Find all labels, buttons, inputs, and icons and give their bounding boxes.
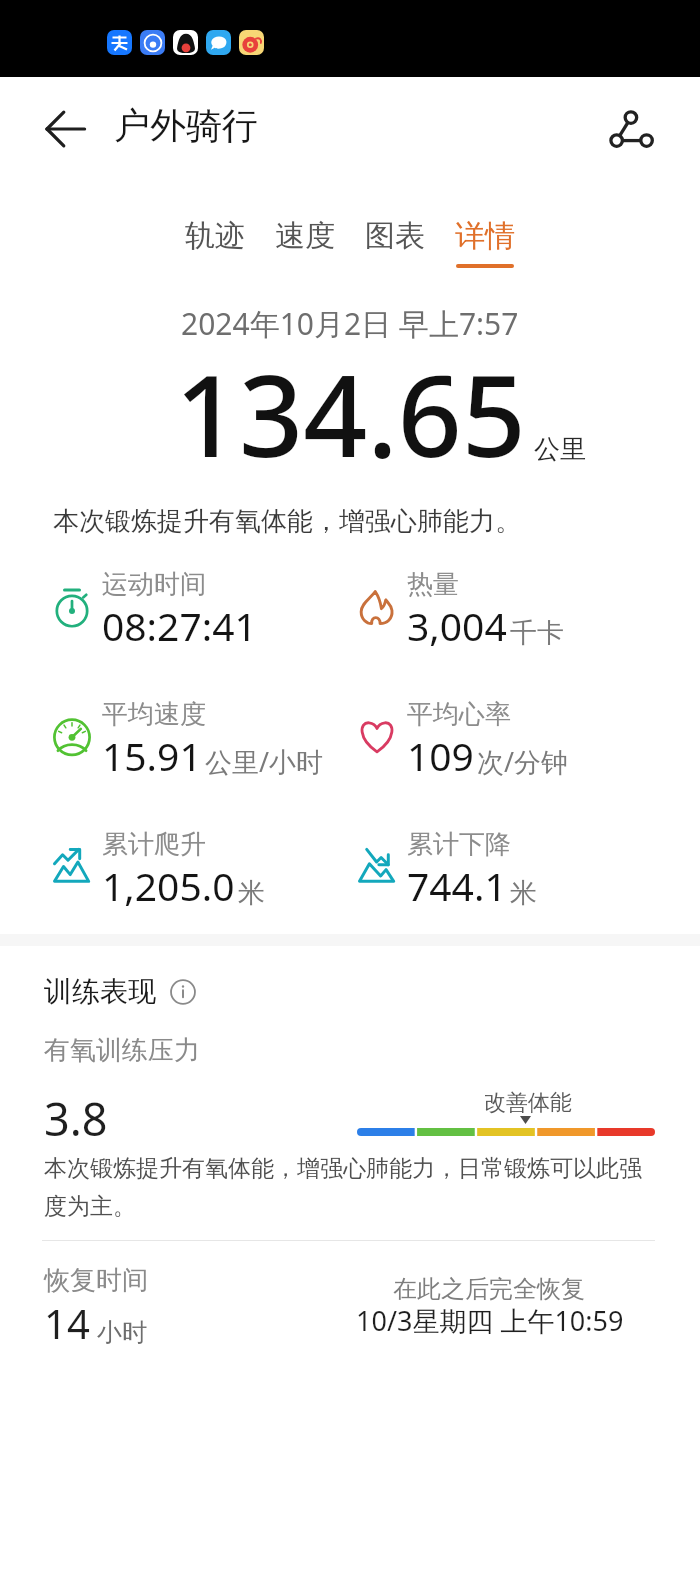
staticText: 14: [44, 1296, 90, 1350]
staticText: 109: [407, 729, 474, 782]
staticText: 公里/小时: [205, 743, 324, 780]
staticText: 恢复时间: [44, 1264, 148, 1297]
staticText: 改善体能: [484, 1089, 572, 1117]
staticText: 米: [510, 876, 537, 910]
staticText: 2024年10月2日 早上7:57: [181, 303, 519, 344]
button[interactable]: 轨迹: [170, 217, 260, 268]
button[interactable]: Info: [170, 979, 196, 1005]
staticText: 10/3星期四 上午10:59: [356, 1302, 624, 1339]
staticText: 平均速度: [102, 698, 206, 731]
staticText: 小时: [97, 1317, 147, 1348]
staticText: 本次锻炼提升有氧体能，增强心肺能力，日常锻炼可以此强 度为主。: [44, 1154, 684, 1221]
staticText: 3,004: [407, 599, 507, 652]
staticText: 744.1: [407, 859, 507, 912]
staticText: 轨迹: [185, 217, 245, 255]
staticText: 本次锻炼提升有氧体能，增强心肺能力。: [53, 505, 521, 538]
staticText: 户外骑行: [114, 103, 258, 148]
staticText: 千卡: [510, 616, 564, 650]
staticText: 08:27:41: [102, 599, 257, 652]
button[interactable]: 详情: [440, 217, 530, 268]
staticText: 累计下降: [407, 828, 511, 861]
staticText: 米: [238, 876, 265, 910]
staticText: 详情: [455, 217, 515, 255]
staticText: 在此之后完全恢复: [393, 1274, 585, 1304]
staticText: 运动时间: [102, 568, 206, 601]
button[interactable]: 图表: [350, 217, 440, 268]
staticText: 平均心率: [407, 698, 511, 731]
staticText: 1,205.0: [102, 859, 235, 912]
staticText: 训练表现: [44, 974, 156, 1009]
staticText: 图表: [365, 217, 425, 255]
staticText: 热量: [407, 568, 459, 601]
staticText: 次/分钟: [477, 743, 569, 780]
staticText: 有氧训练压力: [44, 1034, 200, 1067]
staticText: 15.91: [102, 729, 202, 782]
staticText: 速度: [275, 217, 335, 255]
button[interactable]: Share: [598, 98, 662, 162]
staticText: 公里: [534, 433, 586, 466]
button[interactable]: Back: [34, 98, 96, 160]
button[interactable]: 速度: [260, 217, 350, 268]
staticText: 累计爬升: [102, 828, 206, 861]
staticText: 3.8: [44, 1088, 108, 1149]
staticText: 134.65: [175, 337, 526, 490]
